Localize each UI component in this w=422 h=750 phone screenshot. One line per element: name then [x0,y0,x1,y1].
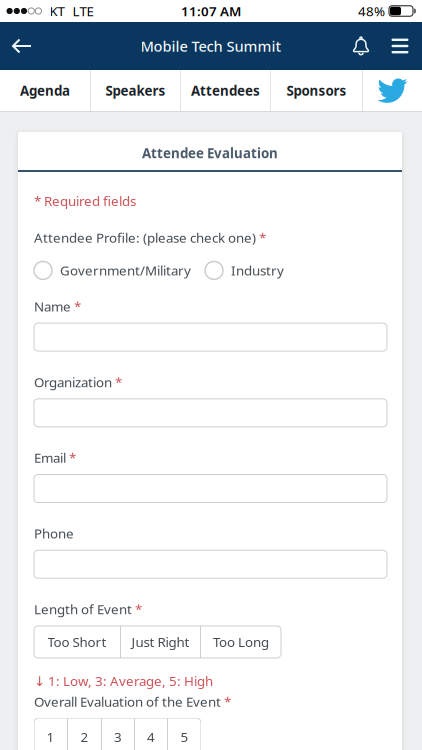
button[interactable]: Back [0,22,44,70]
staticText: Speakers [105,82,165,99]
staticText: * [259,229,266,246]
staticText: Government/Military [60,262,191,279]
staticText: 2 [80,728,88,746]
staticText: 1 [46,728,54,746]
staticText: * [115,373,122,391]
button[interactable]: Industry [205,261,284,279]
staticText: Agenda [20,82,70,99]
button[interactable]: Speakers [91,70,180,111]
staticText: 4 [147,728,155,746]
staticText: 5 [180,728,188,746]
button[interactable]: 4 [135,718,167,750]
staticText: Attendees [191,82,260,99]
staticText: KT [49,2,64,20]
staticText: Industry [231,262,284,279]
button[interactable]: 2 [68,718,101,750]
staticText: * [69,449,76,466]
staticText: Just Right [131,633,189,651]
staticText: Name [34,297,71,315]
staticText: Organization [34,373,112,391]
staticText: Attendee Profile: (please check one) [34,229,256,246]
button[interactable]: Government/Military [34,261,191,279]
button[interactable]: Too Long [201,626,281,658]
button[interactable]: Twitter [363,70,422,111]
staticText: * Required fields [34,192,136,210]
button[interactable]: Just Right [121,626,200,658]
staticText: Phone [34,524,74,542]
button[interactable]: Agenda [0,70,90,111]
staticText: Attendee Evaluation [142,144,278,162]
staticText: * [135,600,142,618]
staticText: Sponsors [286,82,346,99]
staticText: ↓ 1: Low, 3: Average, 5: High [34,672,213,690]
staticText: 11:07 AM [181,2,241,20]
button[interactable]: Name text field [34,323,387,351]
button[interactable]: 1 [34,718,67,750]
staticText: Email [34,449,66,466]
button[interactable]: 5 [168,718,201,750]
button[interactable]: 3 [102,718,134,750]
staticText: * [74,297,81,315]
button[interactable]: Sponsors [271,70,362,111]
staticText: 48% [358,2,385,20]
staticText: LTE [72,2,93,20]
button[interactable]: Notifications [342,22,380,70]
button[interactable]: Email text field [34,474,387,502]
staticText: * [224,693,231,710]
button[interactable]: Too Short [34,626,120,658]
staticText: Mobile Tech Summit [140,36,281,56]
button[interactable]: Phone text field [34,550,387,578]
staticText: Too Long [213,633,269,651]
staticText: Length of Event [34,600,132,618]
button[interactable]: Menu [380,22,420,70]
staticText: Too Short [47,633,106,651]
button[interactable]: Attendees [181,70,270,111]
staticText: 3 [114,728,122,746]
button[interactable]: Organization text field [34,399,387,427]
staticText: Overall Evaluation of the Event [34,693,221,710]
